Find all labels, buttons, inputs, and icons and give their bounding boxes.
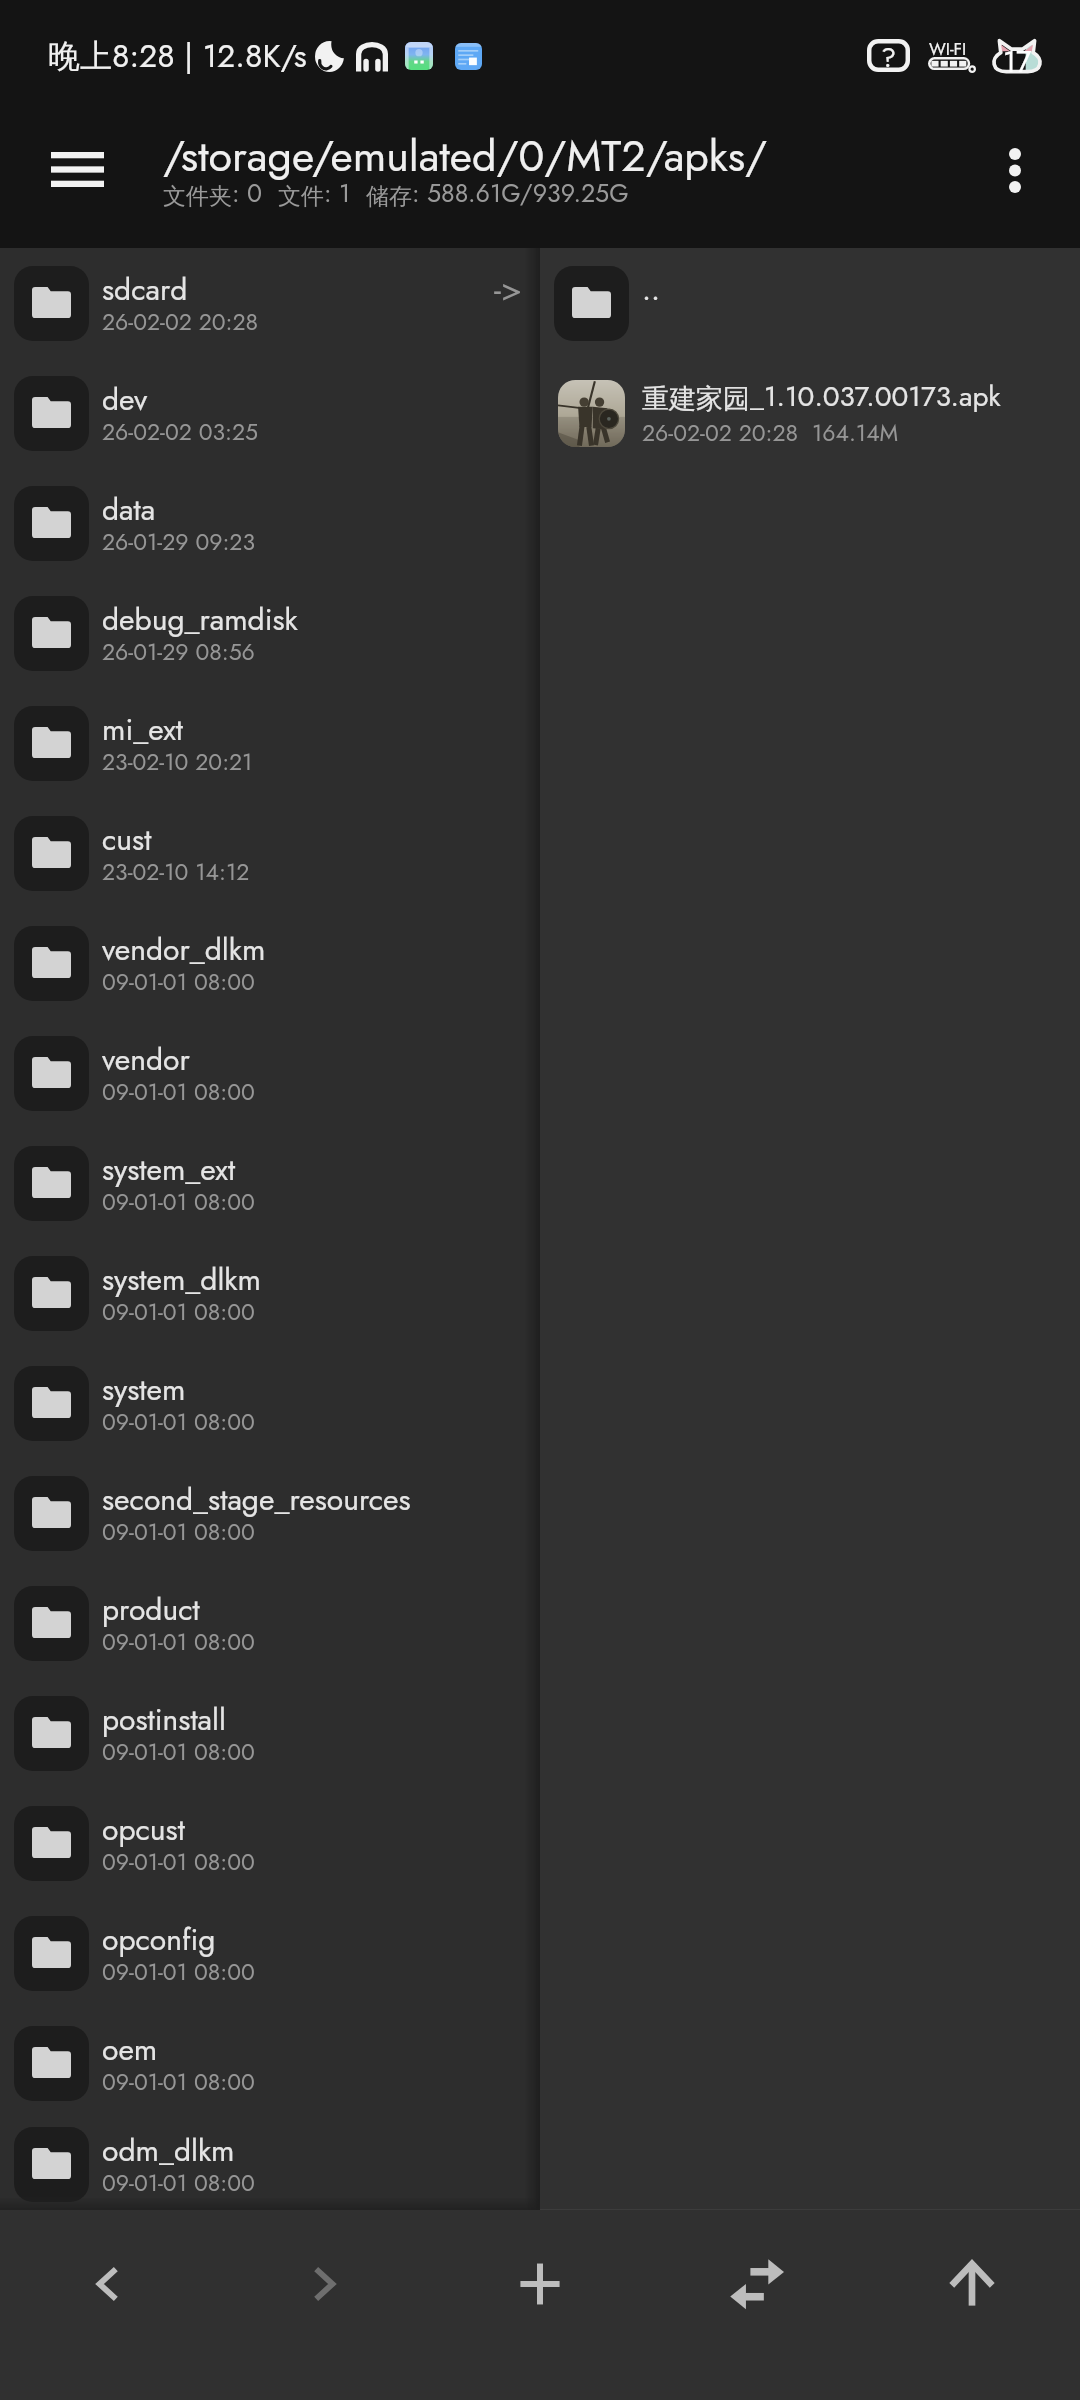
button[interactable]: More options: [970, 125, 1060, 215]
staticText: debug_ramdisk: [102, 598, 298, 641]
staticText: 23-02-10 20:21: [102, 745, 253, 778]
staticText: 重建家园: [642, 382, 750, 416]
button[interactable]: vendor_dlkm: [0, 908, 540, 1018]
button[interactable]: dev: [0, 358, 540, 468]
staticText: 文件夹: [163, 182, 232, 211]
staticText: product: [102, 1588, 200, 1631]
button[interactable]: debug_ramdisk: [0, 578, 540, 688]
button[interactable]: Up one level: [864, 2210, 1080, 2358]
staticText: ..: [642, 268, 660, 311]
staticText: 文件: [278, 182, 324, 211]
staticText: system_ext: [102, 1148, 236, 1191]
staticText: 09-01-01 08:00: [102, 2065, 255, 2098]
staticText: mi_ext: [102, 708, 183, 751]
button[interactable]: oem: [0, 2008, 540, 2118]
button[interactable]: Open navigation menu: [27, 119, 127, 219]
button[interactable]: Back: [0, 2210, 216, 2358]
staticText: 09-01-01 08:00: [102, 1515, 255, 1548]
button[interactable]: system_dlkm: [0, 1238, 540, 1348]
button[interactable]: sdcard: [0, 248, 540, 358]
staticText: 26-02-02 20:28 164.14M: [642, 416, 899, 449]
staticText: 09-01-01 08:00: [102, 1075, 255, 1108]
staticText: : 1: [324, 175, 366, 211]
staticText: sdcard: [102, 268, 188, 311]
button[interactable]: vendor: [0, 1018, 540, 1128]
button[interactable]: Forward: [216, 2210, 432, 2358]
staticText: 09-01-01 08:00: [102, 1405, 255, 1438]
staticText: vendor: [102, 1038, 190, 1081]
staticText: ->: [494, 266, 523, 314]
staticText: : 0: [232, 175, 278, 211]
staticText: WI-FI: [929, 37, 967, 62]
staticText: 26-02-02 03:25: [102, 415, 258, 448]
staticText: ?: [881, 38, 897, 71]
button[interactable]: cust: [0, 798, 540, 908]
button[interactable]: odm_dlkm: [0, 2118, 540, 2210]
staticText: odm_dlkm: [102, 2129, 235, 2172]
button[interactable]: data: [0, 468, 540, 578]
staticText: vendor_dlkm: [102, 928, 266, 971]
button[interactable]: postinstall: [0, 1678, 540, 1788]
staticText: 储存: [366, 182, 412, 211]
staticText: 09-01-01 08:00: [102, 1625, 255, 1658]
button[interactable]: ..: [540, 248, 1080, 358]
button[interactable]: Switch panel: [648, 2210, 864, 2358]
staticText: data: [102, 488, 156, 531]
button[interactable]: opcust: [0, 1788, 540, 1898]
staticText: second_stage_resources: [102, 1478, 411, 1521]
staticText: dev: [102, 378, 148, 421]
staticText: 26-01-29 09:23: [102, 525, 255, 558]
staticText: 09-01-01 08:00: [102, 1845, 255, 1878]
button[interactable]: second_stage_resources: [0, 1458, 540, 1568]
staticText: 23-02-10 14:12: [102, 855, 250, 888]
staticText: 09-01-01 08:00: [102, 965, 255, 998]
staticText: opcust: [102, 1808, 185, 1851]
staticText: _1.10.037.00173.apk: [750, 376, 1001, 416]
button[interactable]: product: [0, 1568, 540, 1678]
staticText: 09-01-01 08:00: [102, 1185, 255, 1218]
staticText: 09-01-01 08:00: [102, 2166, 255, 2199]
button[interactable]: system: [0, 1348, 540, 1458]
staticText: system: [102, 1368, 186, 1411]
staticText: cust: [102, 818, 152, 861]
staticText: opconfig: [102, 1918, 216, 1961]
staticText: system_dlkm: [102, 1258, 261, 1301]
staticText: 晚上8:28 | 12.8K/s: [48, 33, 307, 79]
staticText: 26-02-02 20:28: [102, 305, 259, 338]
staticText: 09-01-01 08:00: [102, 1295, 255, 1328]
staticText: oem: [102, 2028, 158, 2071]
button[interactable]: New file: [432, 2210, 648, 2358]
staticText: 17: [1003, 41, 1032, 75]
staticText: 09-01-01 08:00: [102, 1955, 255, 1988]
button[interactable]: 重建家园: [540, 358, 1080, 468]
button[interactable]: system_ext: [0, 1128, 540, 1238]
staticText: : 588.61G/939.25G: [412, 175, 629, 211]
staticText: /storage/emulated/0/MT2/apks/: [163, 125, 768, 187]
staticText: 26-01-29 08:56: [102, 635, 255, 668]
button[interactable]: opconfig: [0, 1898, 540, 2008]
button[interactable]: mi_ext: [0, 688, 540, 798]
staticText: 09-01-01 08:00: [102, 1735, 255, 1768]
staticText: postinstall: [102, 1698, 226, 1741]
